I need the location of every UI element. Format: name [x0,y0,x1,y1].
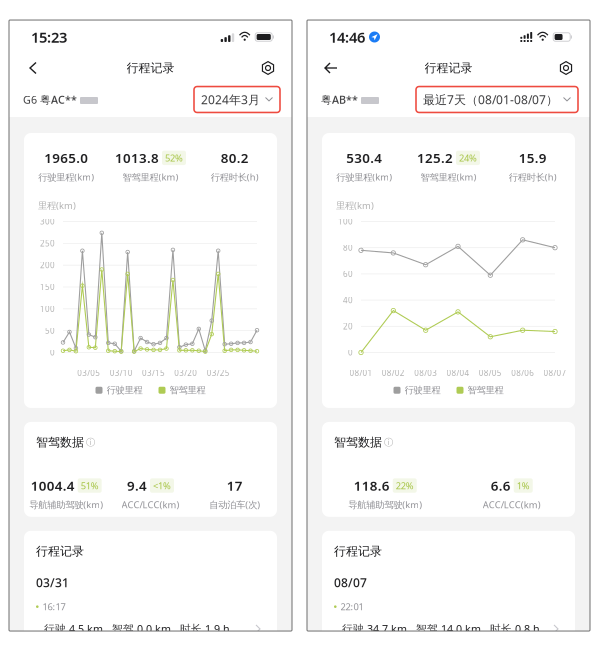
staticText: 0 [348,347,353,358]
staticText: 行驶里程(km) [38,171,94,183]
staticText: 智驾数据 [334,435,382,450]
staticText: <1% [153,479,171,492]
staticText: 60 [343,269,353,279]
staticText: 1% [517,479,530,492]
staticText: 6.6 [491,477,511,494]
staticText: 100 [40,303,55,314]
staticText: 导航辅助驾驶(km) [348,498,422,511]
staticText: 20 [343,321,353,332]
staticText: 530.4 [346,149,382,167]
staticText: 08/05 [479,368,502,378]
staticText: 2024年3月 [201,91,260,107]
staticText: 16:17 [43,600,66,613]
staticText: 里程(km) [38,199,76,211]
staticText: 08/02 [382,368,405,378]
staticText: 100 [338,216,353,227]
staticText: 118.6 [354,477,390,494]
staticText: 导航辅助驾驶(km) [29,498,103,511]
staticText: 0 [50,347,55,358]
staticText: 17 [227,477,243,494]
staticText: G6 [23,92,40,107]
staticText: 14.0 km [441,622,481,636]
staticText: 时长 [180,622,202,635]
staticText: 行驶 [342,622,364,635]
staticText: 34.7 km [367,622,407,636]
staticText: 行程记录 [126,61,174,75]
staticText: 智驾数据 [36,435,84,450]
staticText: 03/31 [36,574,69,590]
staticText: 15:23 [31,27,67,47]
staticText: 14:46 [329,27,365,47]
button[interactable]: 行驶 [322,613,575,645]
button[interactable]: 2024年3月 [194,86,280,112]
staticText: 行程记录 [36,544,84,558]
staticText: 智驾里程 [467,384,503,396]
staticText: 22% [396,479,414,492]
staticText: 智驾 [416,622,438,635]
staticText: 08/07 [543,368,566,378]
staticText: 80.2 [221,149,249,167]
staticText: 40 [343,295,353,305]
staticText: 4.5 km [69,622,103,636]
staticText: 最近7天（08/01-08/07） [423,91,558,107]
staticText: 1.9 h [205,622,230,636]
staticText: 08/04 [446,368,469,378]
staticText: 粤AB** [321,92,358,107]
staticText: 行程时长(h) [211,171,259,183]
staticText: 9.4 [127,477,147,494]
staticText: 粤AC** [40,92,77,107]
button[interactable]: 行驶 [24,613,277,645]
staticText: 52% [165,152,183,164]
staticText: ACC/LCC(km) [483,498,541,511]
staticText: 0.0 km [137,622,171,636]
staticText: 1965.0 [44,149,88,167]
staticText: 行程时长(h) [509,171,557,183]
staticText: 200 [40,260,55,270]
button[interactable]: 设置 [254,54,282,82]
staticText: ⓘ [86,437,95,448]
staticText: 行驶里程 [404,384,440,396]
staticText: 03/05 [77,368,100,378]
staticText: 08/03 [414,368,437,378]
staticText: ⓘ [384,437,393,448]
staticText: 03/20 [174,368,197,378]
staticText: 时长 [490,622,512,635]
staticText: 08/01 [349,368,372,378]
staticText: 1013.8 [115,149,159,167]
staticText: 150 [40,282,55,292]
staticText: 22:01 [341,600,364,613]
staticText: 03/25 [207,368,230,378]
staticText: 行驶里程 [106,384,142,396]
button[interactable]: 返回 [19,54,47,82]
staticText: 08/06 [511,368,534,378]
button[interactable]: 设置 [552,54,580,82]
button[interactable]: 最近7天（08/01-08/07） [416,86,578,112]
staticText: 300 [40,216,55,227]
staticText: 50 [45,325,55,336]
staticText: 0.8 h [515,622,540,636]
staticText: 125.2 [417,149,453,167]
staticText: 智驾里程(km) [122,171,178,183]
staticText: 15.9 [519,149,547,167]
staticText: 03/15 [142,368,165,378]
staticText: 行程记录 [334,544,382,558]
staticText: ACC/LCC(km) [121,498,179,511]
staticText: 智驾里程(km) [420,171,476,183]
staticText: 行驶 [44,622,66,635]
staticText: 24% [459,152,477,164]
staticText: 行驶里程(km) [336,171,392,183]
staticText: 80 [343,242,353,253]
staticText: 51% [81,479,99,492]
staticText: 自动泊车(次) [209,498,260,511]
staticText: 智驾 [112,622,134,635]
staticText: 里程(km) [336,199,374,211]
staticText: 03/10 [110,368,133,378]
staticText: 250 [40,238,55,249]
button[interactable]: 返回 [317,54,345,82]
staticText: 行程记录 [424,61,472,75]
staticText: 智驾里程 [169,384,205,396]
staticText: 08/07 [334,574,367,590]
staticText: 1004.4 [31,477,75,494]
